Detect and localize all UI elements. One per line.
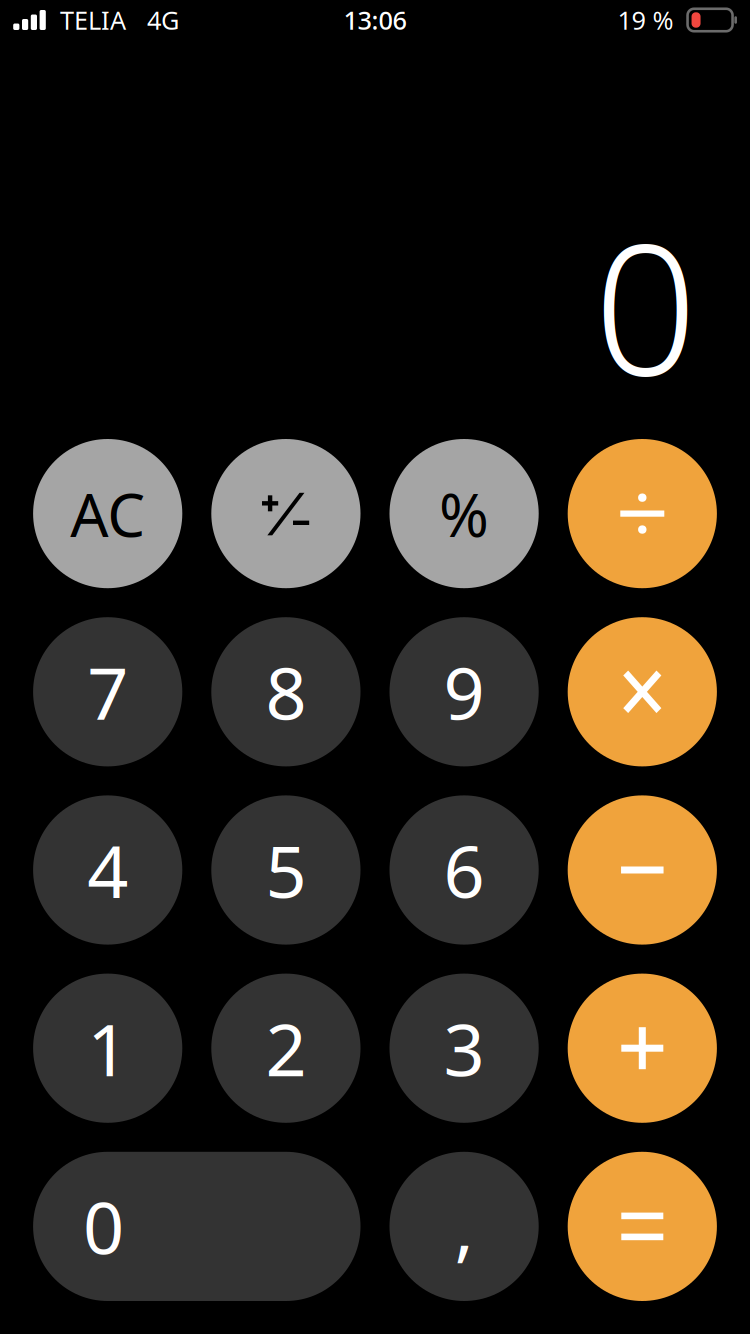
button[interactable]: 7 bbox=[33, 617, 182, 766]
button[interactable]: 0 bbox=[33, 1152, 360, 1301]
staticText: 1 bbox=[87, 1000, 128, 1096]
button[interactable]: 6 bbox=[389, 795, 539, 945]
staticText: 2 bbox=[265, 1000, 306, 1096]
staticText: TELIA 4G bbox=[46, 3, 179, 37]
staticText: 0 bbox=[83, 1179, 124, 1274]
button[interactable]: 4 bbox=[33, 795, 182, 945]
button[interactable]: Minus bbox=[568, 795, 717, 945]
button[interactable]: AC bbox=[33, 439, 182, 588]
staticText: 0 bbox=[594, 184, 698, 425]
button[interactable]: % bbox=[389, 439, 539, 588]
staticText: , bbox=[455, 1179, 474, 1274]
button[interactable]: 8 bbox=[211, 617, 360, 766]
button[interactable]: Equals bbox=[568, 1152, 717, 1301]
staticText: AC bbox=[70, 474, 145, 553]
button[interactable]: Toggle sign bbox=[211, 439, 360, 588]
staticText: 19 % bbox=[617, 3, 687, 37]
button[interactable]: Plus bbox=[568, 974, 717, 1123]
button[interactable]: , bbox=[389, 1152, 539, 1301]
button[interactable]: Multiply bbox=[568, 617, 717, 766]
button[interactable]: 5 bbox=[211, 795, 360, 945]
staticText: 7 bbox=[87, 644, 128, 740]
button[interactable]: 2 bbox=[211, 974, 360, 1123]
staticText: 5 bbox=[265, 822, 306, 918]
button[interactable]: Divide bbox=[568, 439, 717, 588]
staticText: 9 bbox=[444, 644, 485, 740]
staticText: 6 bbox=[444, 822, 485, 918]
staticText: 4 bbox=[87, 822, 128, 918]
button[interactable]: 1 bbox=[33, 974, 182, 1123]
staticText: % bbox=[439, 474, 489, 553]
button[interactable]: 9 bbox=[389, 617, 539, 766]
staticText: 13:06 bbox=[343, 3, 406, 37]
staticText: 3 bbox=[444, 1000, 485, 1096]
button[interactable]: 3 bbox=[389, 974, 539, 1123]
staticText: 8 bbox=[265, 644, 306, 740]
